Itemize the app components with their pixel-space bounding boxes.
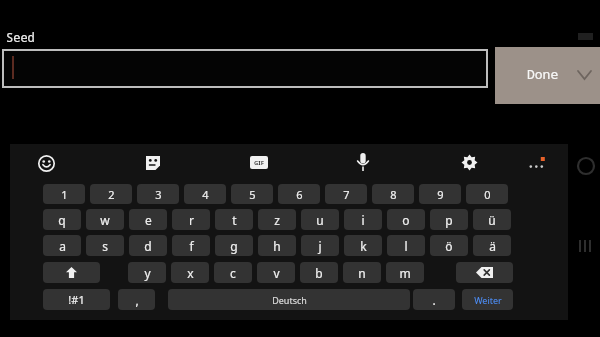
button[interactable]: h	[258, 235, 296, 256]
staticText: f	[189, 238, 194, 254]
staticText: r	[189, 212, 194, 228]
button[interactable]: Deutsch	[168, 289, 410, 310]
button[interactable]: w	[86, 209, 124, 230]
staticText: z	[274, 212, 280, 228]
button[interactable]: 3	[137, 184, 179, 204]
button[interactable]: d	[129, 235, 167, 256]
button[interactable]: ä	[473, 235, 511, 256]
staticText: 5	[249, 187, 256, 202]
button[interactable]: p	[430, 209, 468, 230]
staticText: p	[445, 212, 453, 228]
button[interactable]: Recent apps	[577, 238, 595, 254]
button[interactable]: f	[172, 235, 210, 256]
button[interactable]: r	[172, 209, 210, 230]
button[interactable]: ö	[430, 235, 468, 256]
staticText: u	[316, 212, 324, 228]
staticText: 7	[343, 187, 350, 202]
button[interactable]: 9	[419, 184, 461, 204]
staticText: y	[144, 265, 151, 281]
staticText: 3	[155, 187, 162, 202]
button[interactable]: l	[387, 235, 425, 256]
staticText: .	[432, 292, 436, 308]
staticText: ,	[135, 292, 139, 308]
button[interactable]: Done	[495, 47, 600, 104]
staticText: ä	[489, 238, 496, 254]
staticText: i	[361, 212, 365, 228]
button[interactable]: 6	[278, 184, 320, 204]
staticText: 9	[437, 187, 444, 202]
staticText: 4	[202, 187, 209, 202]
button[interactable]: a	[43, 235, 81, 256]
button[interactable]: 1	[43, 184, 85, 204]
button[interactable]: k	[344, 235, 382, 256]
button[interactable]: 7	[325, 184, 367, 204]
staticText: k	[360, 238, 367, 254]
button[interactable]: ,	[118, 289, 155, 310]
button[interactable]: Seed	[6, 29, 35, 45]
button[interactable]: x	[171, 262, 209, 283]
button[interactable]: j	[301, 235, 339, 256]
button[interactable]: t	[215, 209, 253, 230]
button[interactable]: 5	[231, 184, 273, 204]
staticText: g	[230, 238, 238, 254]
staticText: 0	[484, 187, 491, 202]
staticText: Seed	[6, 29, 35, 45]
staticText: 2	[108, 187, 115, 202]
staticText: GIF	[254, 159, 264, 167]
button[interactable]: c	[214, 262, 252, 283]
button[interactable]: More options	[528, 157, 547, 170]
button[interactable]: Stickers	[145, 155, 161, 171]
button[interactable]: s	[86, 235, 124, 256]
staticText: o	[402, 212, 410, 228]
button[interactable]: n	[343, 262, 381, 283]
button[interactable]: v	[257, 262, 295, 283]
button[interactable]: e	[129, 209, 167, 230]
button[interactable]: i	[344, 209, 382, 230]
button[interactable]: Shift	[43, 262, 100, 283]
button[interactable]: Emoji	[38, 155, 55, 172]
staticText: m	[399, 265, 411, 281]
button[interactable]: Backspace	[456, 262, 513, 283]
staticText: c	[230, 265, 236, 281]
button[interactable]: q	[43, 209, 81, 230]
button[interactable]: z	[258, 209, 296, 230]
staticText: t	[232, 212, 237, 228]
button[interactable]: b	[300, 262, 338, 283]
staticText: Weiter	[474, 294, 502, 306]
button[interactable]: 8	[372, 184, 414, 204]
staticText: !#1	[68, 292, 85, 307]
button[interactable]: u	[301, 209, 339, 230]
button[interactable]: Voice input	[356, 152, 370, 172]
button[interactable]: GIF	[250, 156, 268, 169]
staticText: Done	[527, 65, 559, 83]
staticText: v	[273, 265, 280, 281]
button[interactable]: m	[386, 262, 424, 283]
button[interactable]: 4	[184, 184, 226, 204]
staticText: ü	[488, 212, 496, 228]
button[interactable]: g	[215, 235, 253, 256]
staticText: 1	[61, 187, 68, 202]
button[interactable]: Settings	[461, 154, 478, 171]
staticText: 8	[390, 187, 397, 202]
staticText: 6	[296, 187, 303, 202]
button[interactable]: ü	[473, 209, 511, 230]
staticText: s	[102, 238, 108, 254]
staticText: l	[404, 238, 408, 254]
staticText: ö	[445, 238, 453, 254]
button[interactable]	[2, 49, 488, 88]
staticText: n	[358, 265, 366, 281]
staticText: b	[315, 265, 323, 281]
staticText: x	[187, 265, 194, 281]
button[interactable]: 2	[90, 184, 132, 204]
staticText: a	[59, 238, 66, 254]
staticText: Deutsch	[272, 294, 307, 306]
button[interactable]: !#1	[43, 289, 110, 310]
button[interactable]: o	[387, 209, 425, 230]
button[interactable]: .	[413, 289, 455, 310]
button[interactable]: y	[128, 262, 166, 283]
staticText: q	[58, 212, 66, 228]
staticText: j	[318, 238, 322, 254]
button[interactable]: 0	[466, 184, 508, 204]
button[interactable]: Home	[577, 157, 595, 175]
button[interactable]: Weiter	[462, 289, 513, 310]
